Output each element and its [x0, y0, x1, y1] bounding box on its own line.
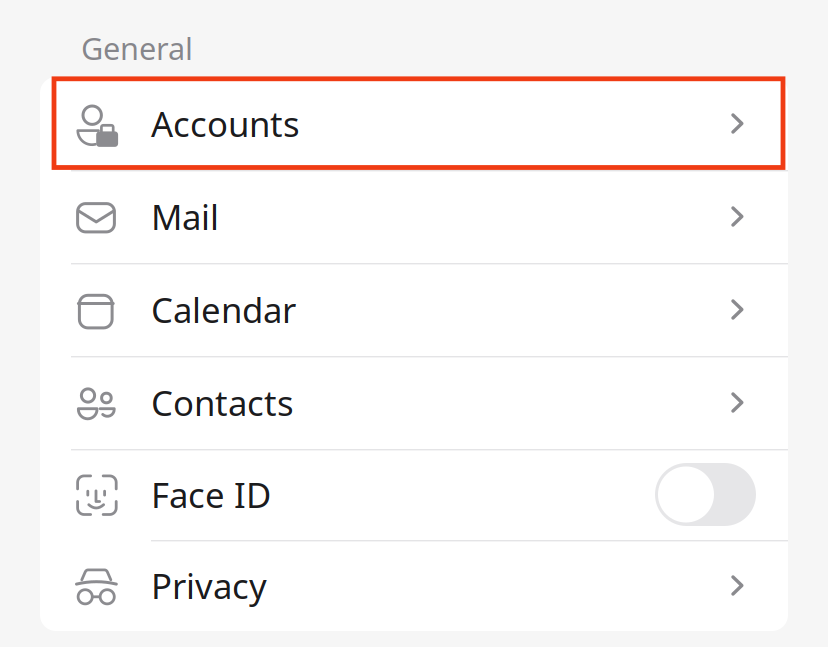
staticText: Mail	[151, 193, 219, 239]
staticText: Accounts	[151, 100, 300, 146]
button[interactable]: Accounts	[40, 77, 788, 170]
button[interactable]: Face ID	[40, 449, 788, 540]
staticText: Face ID	[151, 471, 271, 517]
staticText: General	[81, 28, 193, 68]
button[interactable]: Mail	[40, 170, 788, 263]
staticText: Privacy	[151, 562, 267, 608]
button[interactable]: Privacy	[40, 540, 788, 631]
staticText: Contacts	[151, 379, 294, 425]
button[interactable]: Contacts	[40, 356, 788, 449]
button[interactable]: Calendar	[40, 263, 788, 356]
staticText: Calendar	[151, 286, 296, 332]
